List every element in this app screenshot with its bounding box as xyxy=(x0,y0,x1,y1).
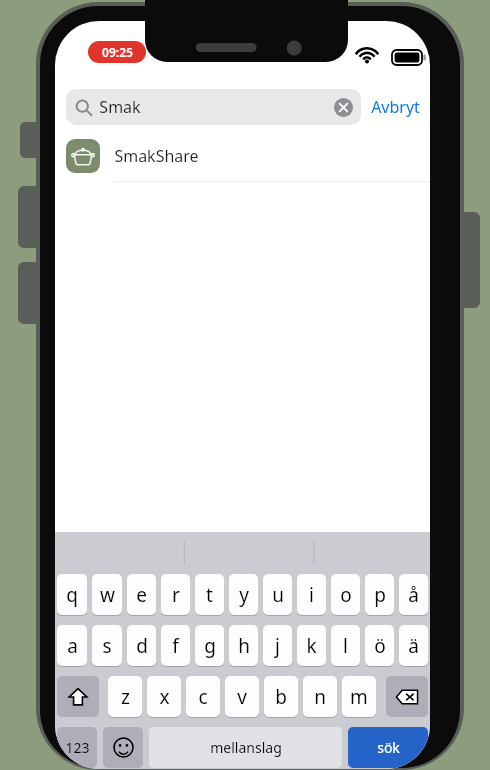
staticText: x xyxy=(159,684,170,710)
staticText: y xyxy=(239,582,249,608)
staticText: l xyxy=(343,633,348,659)
button[interactable]: u xyxy=(263,574,292,615)
button[interactable]: mellanslag xyxy=(149,727,342,768)
staticText: o xyxy=(340,582,352,608)
staticText: å xyxy=(408,582,419,608)
staticText: j xyxy=(275,633,280,659)
button[interactable]: b xyxy=(264,676,298,717)
button[interactable]: Clear search xyxy=(334,98,353,117)
button[interactable]: Shift xyxy=(57,676,99,717)
staticText: q xyxy=(66,582,78,608)
button[interactable]: ä xyxy=(399,625,428,666)
button[interactable]: a xyxy=(57,625,87,666)
button[interactable]: i xyxy=(297,574,326,615)
button[interactable]: sök xyxy=(348,727,428,768)
button[interactable]: x xyxy=(147,676,181,717)
staticText: 09:25 xyxy=(102,44,133,60)
button[interactable]: r xyxy=(161,574,190,615)
button[interactable]: v xyxy=(225,676,259,717)
button[interactable]: å xyxy=(399,574,428,615)
button[interactable]: ö xyxy=(365,625,394,666)
staticText: f xyxy=(172,633,179,659)
button[interactable]: q xyxy=(57,574,87,615)
staticText: k xyxy=(306,633,317,659)
staticText: w xyxy=(100,582,115,608)
button[interactable]: Avbryt xyxy=(369,90,422,124)
button[interactable]: y xyxy=(229,574,258,615)
staticText: u xyxy=(272,582,284,608)
button[interactable]: Backspace xyxy=(386,676,428,717)
button[interactable]: o xyxy=(331,574,360,615)
button[interactable]: 123 xyxy=(57,727,97,768)
button[interactable]: SmakShare xyxy=(55,131,430,181)
staticText: ä xyxy=(408,633,419,659)
button[interactable]: h xyxy=(229,625,258,666)
staticText: a xyxy=(67,633,78,659)
staticText: d xyxy=(136,633,148,659)
button[interactable]: n xyxy=(303,676,337,717)
staticText: e xyxy=(136,582,147,608)
button[interactable]: p xyxy=(365,574,394,615)
staticText: m xyxy=(350,684,368,710)
staticText: v xyxy=(237,684,247,710)
staticText: b xyxy=(275,684,287,710)
button[interactable]: e xyxy=(127,574,156,615)
staticText: sök xyxy=(377,738,400,757)
button[interactable]: Smak xyxy=(66,89,361,125)
button[interactable]: z xyxy=(108,676,142,717)
button[interactable]: j xyxy=(263,625,292,666)
staticText: n xyxy=(314,684,326,710)
button[interactable]: k xyxy=(297,625,326,666)
staticText: 123 xyxy=(65,738,90,757)
button[interactable]: Emoji xyxy=(103,727,143,768)
button[interactable]: t xyxy=(195,574,224,615)
button[interactable]: f xyxy=(161,625,190,666)
staticText: SmakShare xyxy=(114,145,199,167)
button[interactable]: s xyxy=(92,625,122,666)
staticText: p xyxy=(374,582,386,608)
staticText: h xyxy=(238,633,250,659)
staticText: c xyxy=(198,684,208,710)
staticText: Avbryt xyxy=(371,96,420,118)
button[interactable]: w xyxy=(92,574,122,615)
button[interactable]: d xyxy=(127,625,156,666)
staticText: Smak xyxy=(99,96,141,118)
staticText: i xyxy=(309,582,314,608)
staticText: g xyxy=(204,633,216,659)
staticText: s xyxy=(102,633,112,659)
staticText: r xyxy=(172,582,180,608)
staticText: mellanslag xyxy=(210,738,282,757)
button[interactable]: l xyxy=(331,625,360,666)
button[interactable]: m xyxy=(342,676,376,717)
button[interactable]: g xyxy=(195,625,224,666)
staticText: ö xyxy=(374,633,386,659)
staticText: z xyxy=(121,684,130,710)
button[interactable]: c xyxy=(186,676,220,717)
staticText: t xyxy=(206,582,213,608)
